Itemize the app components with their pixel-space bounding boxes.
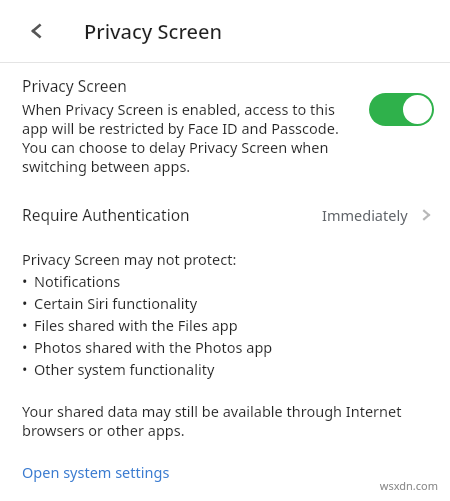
staticText: Privacy Screen <box>84 18 222 45</box>
staticText: Your shared data may still be available … <box>22 401 434 440</box>
staticText: • <box>22 293 28 313</box>
staticText: Files shared with the Files app <box>34 315 238 335</box>
button[interactable]: Back <box>18 12 56 50</box>
button[interactable]: Open system settings <box>22 462 170 482</box>
button[interactable]: Require Authentication <box>0 198 450 231</box>
staticText: When Privacy Screen is enabled, access t… <box>22 99 357 176</box>
staticText: Immediately <box>322 205 408 225</box>
staticText: Other system functionality <box>34 359 215 379</box>
staticText: Notifications <box>34 271 121 291</box>
staticText: Open system settings <box>22 462 170 482</box>
button[interactable]: Privacy Screen toggle, on <box>369 93 434 126</box>
staticText: wsxdn.com <box>379 478 438 493</box>
staticText: Require Authentication <box>22 204 190 225</box>
staticText: • <box>22 337 28 357</box>
staticText: Privacy Screen may not protect: <box>22 249 237 269</box>
staticText: Certain Siri functionality <box>34 293 198 313</box>
staticText: • <box>22 315 28 335</box>
staticText: Privacy Screen <box>22 75 127 96</box>
staticText: Photos shared with the Photos app <box>34 337 273 357</box>
staticText: • <box>22 359 28 379</box>
staticText: • <box>22 271 28 291</box>
